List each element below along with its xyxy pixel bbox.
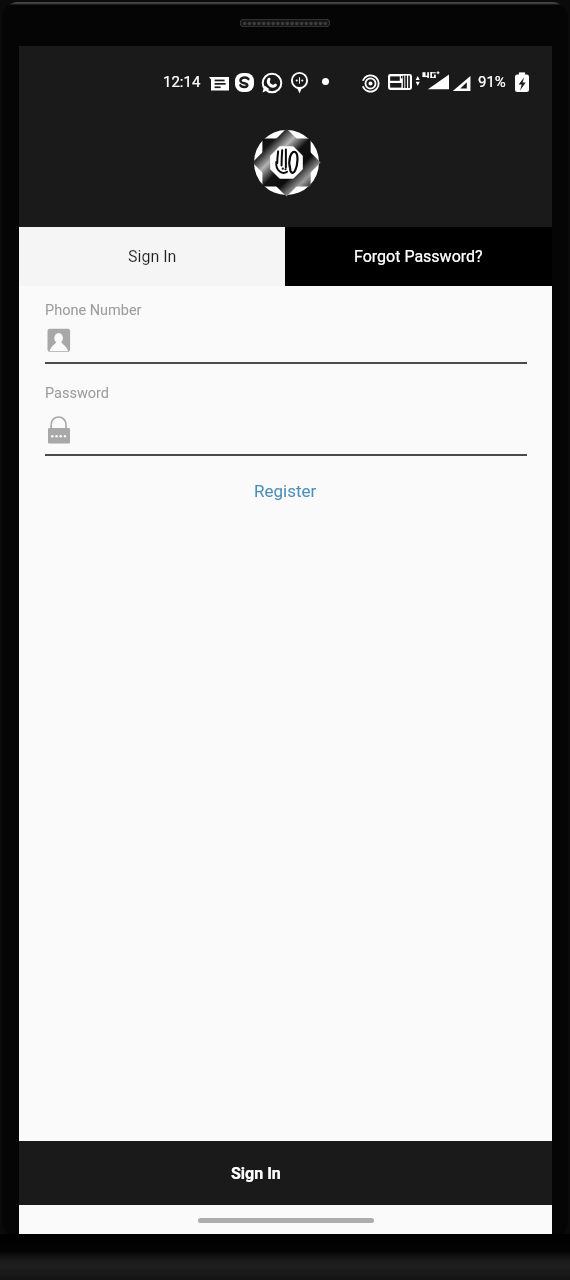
other: Password xyxy=(45,415,73,447)
staticText: Sign In xyxy=(128,247,177,266)
staticText: Password xyxy=(45,385,110,402)
button[interactable]: Register xyxy=(242,475,329,507)
button[interactable]: Sign In xyxy=(19,1141,552,1205)
staticText: Sign In xyxy=(231,1164,281,1183)
staticText: Register xyxy=(254,481,317,501)
other: Account xyxy=(45,328,73,356)
button[interactable]: Sign In xyxy=(19,227,285,286)
staticText: Phone Number xyxy=(45,302,142,319)
staticText: 91% xyxy=(478,73,506,91)
staticText: Forgot Password? xyxy=(354,247,483,266)
button[interactable]: Forgot Password? xyxy=(285,227,552,286)
staticText: 12:14 xyxy=(163,73,201,91)
